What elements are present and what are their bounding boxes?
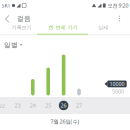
staticText: 23 bbox=[14, 102, 20, 109]
staticText: 7월 26일(수) bbox=[50, 118, 79, 125]
button[interactable]: 일별 bbox=[2, 40, 25, 50]
staticText: SKT bbox=[1, 2, 10, 9]
staticText: 걸음 bbox=[17, 14, 31, 23]
button[interactable]: 상세 bbox=[82, 21, 124, 33]
button[interactable]: 기록보기 bbox=[3, 21, 40, 33]
button[interactable]: 한 번에 가기 bbox=[37, 21, 88, 33]
button[interactable]: Back bbox=[2, 12, 13, 26]
staticText: 상세 bbox=[98, 24, 108, 31]
staticText: 25 bbox=[45, 102, 51, 109]
staticText: 22 bbox=[0, 102, 5, 109]
staticText: 27 bbox=[76, 102, 82, 109]
staticText: 26 bbox=[61, 102, 67, 109]
staticText: 24 bbox=[30, 102, 36, 109]
button[interactable]: More options bbox=[114, 12, 125, 25]
staticText: 5000 bbox=[112, 88, 124, 95]
staticText: 오전 9:20 bbox=[107, 2, 128, 9]
staticText: 10000 bbox=[109, 80, 124, 87]
staticText: 한 번에 가기 bbox=[48, 24, 77, 31]
staticText: 기록보기 bbox=[11, 24, 31, 31]
staticText: 일별 bbox=[4, 41, 18, 49]
